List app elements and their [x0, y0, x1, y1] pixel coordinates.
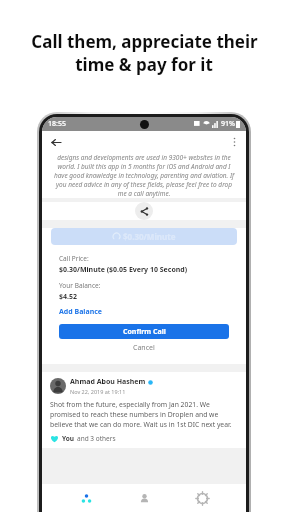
- button[interactable]: $0.30/Minute: [51, 228, 237, 245]
- button[interactable]: You: [50, 434, 116, 443]
- staticText: $0.30/Minute ($0.05 Every 10 Second): [59, 265, 188, 275]
- staticText: time & pay for it: [75, 53, 213, 76]
- staticText: Call Price:: [59, 254, 89, 263]
- button[interactable]: Add Balance: [59, 307, 102, 317]
- button[interactable]: Share: [135, 202, 153, 220]
- staticText: 91%: [221, 119, 235, 129]
- staticText: Shot from the future, especially from Ja…: [50, 400, 238, 429]
- button[interactable]: Back: [48, 134, 64, 150]
- staticText: and 3 others: [77, 434, 116, 443]
- staticText: Nov 22, 2019 at 19:11: [70, 388, 126, 395]
- button[interactable]: Cancel: [59, 343, 229, 353]
- staticText: 18:55: [48, 119, 66, 129]
- button[interactable]: More options: [227, 135, 241, 149]
- staticText: Call them, appreciate their: [31, 30, 258, 53]
- button[interactable]: Home: [72, 484, 100, 512]
- staticText: You: [62, 434, 75, 443]
- staticText: $4.52: [59, 292, 77, 302]
- button[interactable]: Confirm Call: [59, 324, 229, 339]
- button[interactable]: Profile: [130, 484, 158, 512]
- button[interactable]: Settings: [188, 484, 216, 512]
- staticText: designs and developments are used in 930…: [52, 153, 236, 198]
- staticText: Your Balance:: [59, 281, 101, 290]
- staticText: $0.30/Minute: [123, 231, 176, 242]
- staticText: Add Balance: [59, 307, 102, 317]
- staticText: Cancel: [133, 343, 155, 353]
- staticText: Confirm Call: [123, 327, 166, 337]
- staticText: Ahmad Abou Hashem: [70, 377, 146, 387]
